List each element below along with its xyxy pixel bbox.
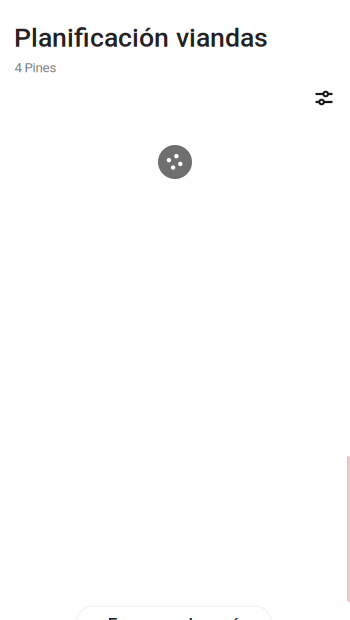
staticText: Empezar el menú (107, 614, 240, 620)
button[interactable]: Empezar el menú (76, 606, 272, 620)
staticText: Planificación viandas (14, 22, 268, 53)
button[interactable]: Filtros (303, 79, 345, 116)
staticText: 4 Pines (14, 60, 56, 76)
